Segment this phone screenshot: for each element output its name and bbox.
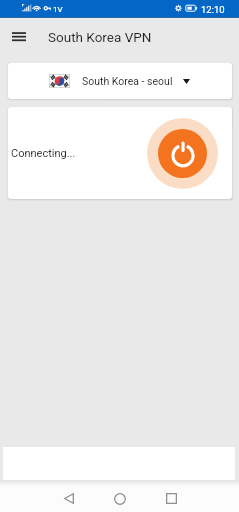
button[interactable]: Back [52,485,86,512]
staticText: South Korea VPN [48,29,152,45]
button[interactable]: Connect [147,118,218,189]
staticText: Connecting... [11,147,76,160]
staticText: 12:10 [201,4,225,15]
staticText: 1V [53,5,63,14]
button[interactable]: Home [103,485,137,512]
button[interactable]: South Korea - seoul [8,63,232,99]
button[interactable]: Recents [154,485,188,512]
staticText: South Korea - seoul [82,75,173,87]
button[interactable]: Menu [0,18,38,56]
